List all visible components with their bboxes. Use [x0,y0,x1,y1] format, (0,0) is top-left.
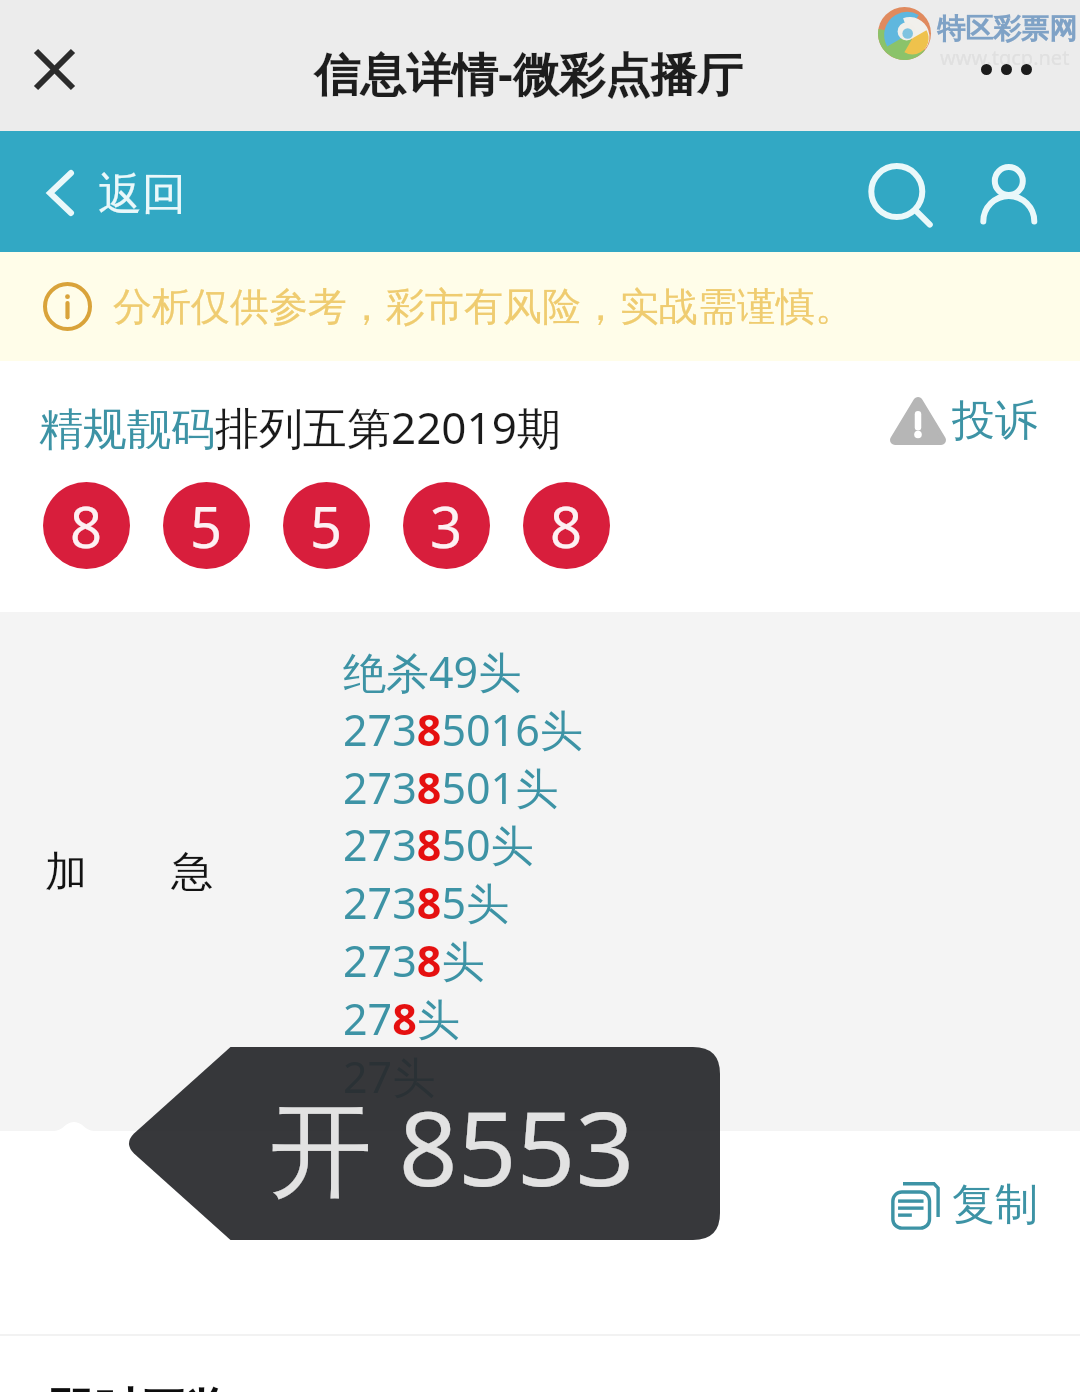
staticText: 278头 [343,989,460,1048]
staticText: 5 [310,488,343,564]
staticText: 5 [190,488,223,564]
button[interactable]: 8 [43,482,130,569]
button[interactable]: 5 [163,482,250,569]
staticText: 投诉 [952,394,1038,448]
staticText: 27头 [343,1047,436,1106]
staticText: 2738501头 [343,758,559,817]
button[interactable]: 投诉 [890,394,1038,448]
staticText: 加 [45,846,87,899]
staticText: 分析仅供参考，彩市有风险，实战需谨慎。 [113,282,854,331]
button[interactable]: Search [856,155,932,231]
button[interactable]: More options [981,64,1032,75]
staticText: 精规靓码排列五第22019期 [39,397,561,457]
button[interactable]: 返回 [46,165,186,220]
staticText: 8 [70,488,103,564]
staticText: 27385头 [343,873,509,932]
staticText: 8 [550,488,583,564]
staticText: 绝杀49头 [343,642,522,701]
button[interactable]: 开 8553 [124,1047,720,1240]
staticText: 273850头 [343,815,534,874]
staticText: 急 [171,846,213,899]
staticText: 开 8553 [269,1076,635,1217]
staticText: 2738头 [343,931,485,990]
staticText: 3 [430,488,463,564]
button[interactable]: 5 [283,482,370,569]
button[interactable]: Account [968,155,1044,231]
staticText: www.tqcp.net [940,44,1070,71]
staticText: 特区彩票网 [937,11,1077,46]
staticText: 27385016头 [343,700,583,759]
button[interactable]: Close [18,33,91,106]
button[interactable]: 复制 [890,1178,1038,1232]
button[interactable]: 8 [523,482,610,569]
staticText: 信息详情-微彩点播厅 [314,42,743,105]
staticText: 复制 [952,1178,1038,1232]
button[interactable]: 3 [403,482,490,569]
staticText: 即时开奖 [48,1382,232,1392]
staticText: 返回 [98,167,186,222]
